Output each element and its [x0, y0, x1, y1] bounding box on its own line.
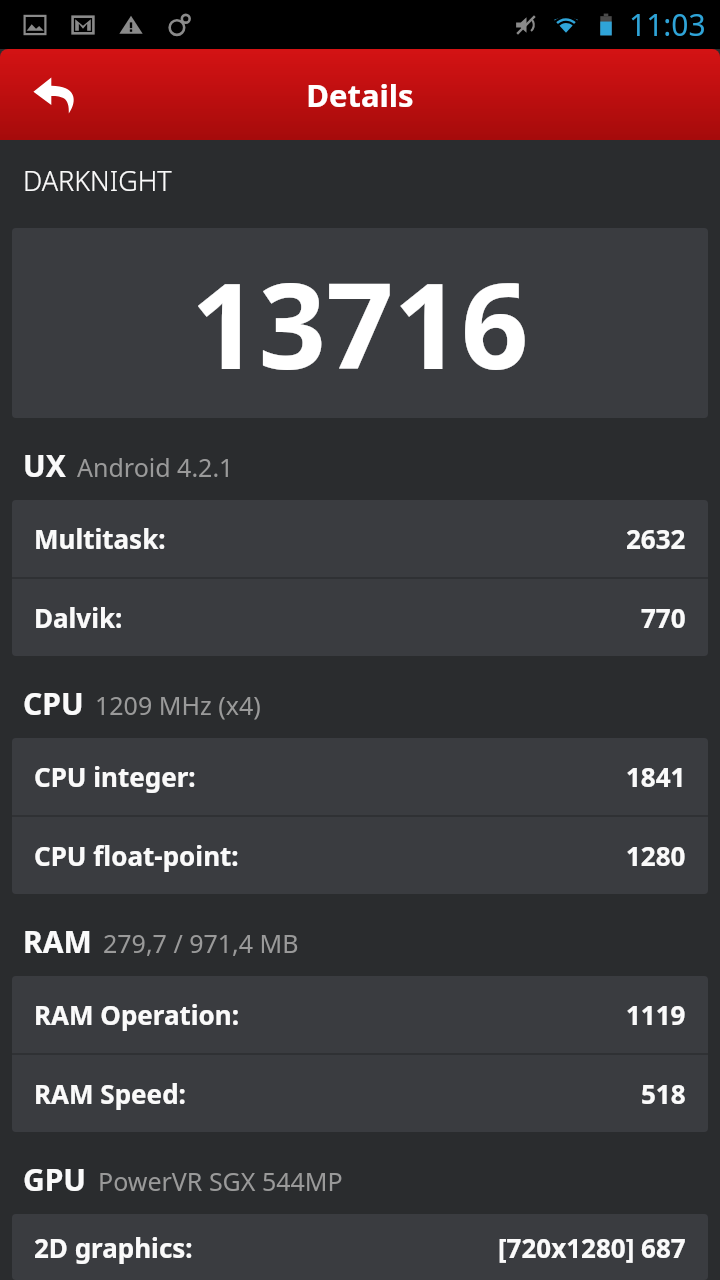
staticText: Dalvik: — [34, 600, 123, 635]
staticText: RAM Speed: — [34, 1076, 186, 1111]
button[interactable]: Multitask: — [12, 500, 708, 577]
staticText: UX — [23, 445, 66, 486]
staticText: 13716 — [191, 243, 529, 404]
staticText: CPU integer: — [34, 759, 196, 794]
staticText: 279,7 / 971,4 MB — [103, 926, 299, 960]
button[interactable]: Back — [0, 49, 110, 140]
button[interactable]: RAM Operation: — [12, 976, 708, 1053]
staticText: 518 — [641, 1076, 686, 1111]
staticText: Multitask: — [34, 521, 166, 556]
staticText: DARKNIGHT — [23, 162, 172, 199]
staticText: GPU — [23, 1159, 87, 1200]
staticText: 770 — [641, 600, 686, 635]
staticText: 1841 — [626, 759, 686, 794]
staticText: Android 4.2.1 — [77, 450, 234, 484]
button[interactable]: 13716 — [12, 228, 708, 418]
button[interactable]: 2D graphics: — [12, 1214, 708, 1280]
staticText: RAM — [23, 921, 92, 962]
button[interactable]: CPU integer: — [12, 738, 708, 815]
staticText: CPU — [23, 683, 84, 724]
staticText: 2D graphics: — [34, 1230, 193, 1265]
staticText: RAM Operation: — [34, 997, 240, 1032]
button[interactable]: Dalvik: — [12, 579, 708, 656]
button[interactable]: RAM Speed: — [12, 1055, 708, 1132]
staticText: 11:03 — [629, 4, 706, 45]
staticText: PowerVR SGX 544MP — [98, 1164, 343, 1198]
staticText: 1209 MHz (x4) — [95, 688, 261, 722]
staticText: CPU float-point: — [34, 838, 239, 873]
button[interactable]: CPU float-point: — [12, 817, 708, 894]
staticText: 1119 — [626, 997, 686, 1032]
staticText: 1280 — [626, 838, 686, 873]
staticText: Details — [306, 74, 414, 116]
staticText: [720x1280] 687 — [498, 1230, 686, 1265]
staticText: 2632 — [626, 521, 686, 556]
